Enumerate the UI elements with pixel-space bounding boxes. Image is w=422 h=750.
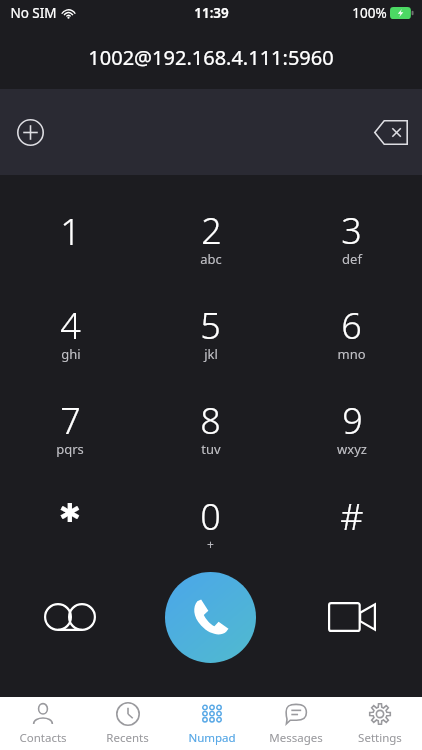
staticText: Numpad (188, 730, 236, 746)
staticText: Contacts (19, 730, 67, 746)
staticText: tuv (201, 440, 221, 458)
button[interactable]: Messages (254, 697, 338, 750)
button[interactable]: 6 (281, 284, 422, 379)
button[interactable]: # (281, 474, 422, 569)
button[interactable]: Call (165, 572, 256, 663)
staticText: jkl (204, 345, 218, 363)
staticText: Messages (269, 730, 323, 746)
button[interactable]: Video call (281, 569, 422, 665)
button[interactable]: Settings (338, 697, 422, 750)
button[interactable]: 2 (140, 189, 281, 284)
staticText: wxyz (337, 440, 367, 458)
staticText: Recents (106, 730, 149, 746)
staticText: 1 (60, 207, 81, 249)
staticText: 7 (60, 396, 81, 438)
button[interactable]: Add contact (8, 110, 52, 154)
staticText: abc (200, 250, 222, 268)
staticText: + (207, 536, 214, 552)
button[interactable]: 3 (281, 189, 422, 284)
staticText: 11:39 (194, 4, 229, 22)
staticText: 2 (201, 206, 222, 248)
button[interactable]: Contacts (0, 697, 85, 750)
staticText: def (342, 250, 362, 268)
staticText: 8 (200, 396, 221, 438)
button[interactable]: 7 (0, 379, 140, 474)
button[interactable]: Voicemail (0, 569, 140, 665)
staticText: ✱ (59, 498, 81, 528)
staticText: 3 (341, 206, 362, 248)
button[interactable]: 4 (0, 284, 140, 379)
staticText: 1002@192.168.4.111:5960 (88, 44, 334, 71)
staticText: 5 (200, 301, 221, 343)
staticText: 6 (341, 301, 362, 343)
staticText: ghi (61, 345, 81, 363)
staticText: 100% (352, 4, 387, 22)
button[interactable]: 8 (140, 379, 281, 474)
staticText: # (340, 492, 364, 534)
staticText: 0 (200, 492, 221, 534)
staticText: pqrs (56, 440, 84, 458)
button[interactable]: Numpad (170, 697, 254, 750)
staticText: mno (337, 345, 366, 363)
staticText: 9 (342, 396, 363, 438)
staticText: 4 (60, 301, 81, 343)
staticText: No SIM (10, 4, 57, 22)
button[interactable]: ✱ (0, 474, 140, 569)
button[interactable]: 1 (0, 189, 140, 284)
button[interactable]: Backspace (368, 109, 414, 155)
button[interactable]: Recents (85, 697, 170, 750)
button[interactable]: 5 (140, 284, 281, 379)
button[interactable]: 9 (281, 379, 422, 474)
staticText: Settings (358, 730, 402, 746)
button[interactable]: 0 (140, 474, 281, 569)
